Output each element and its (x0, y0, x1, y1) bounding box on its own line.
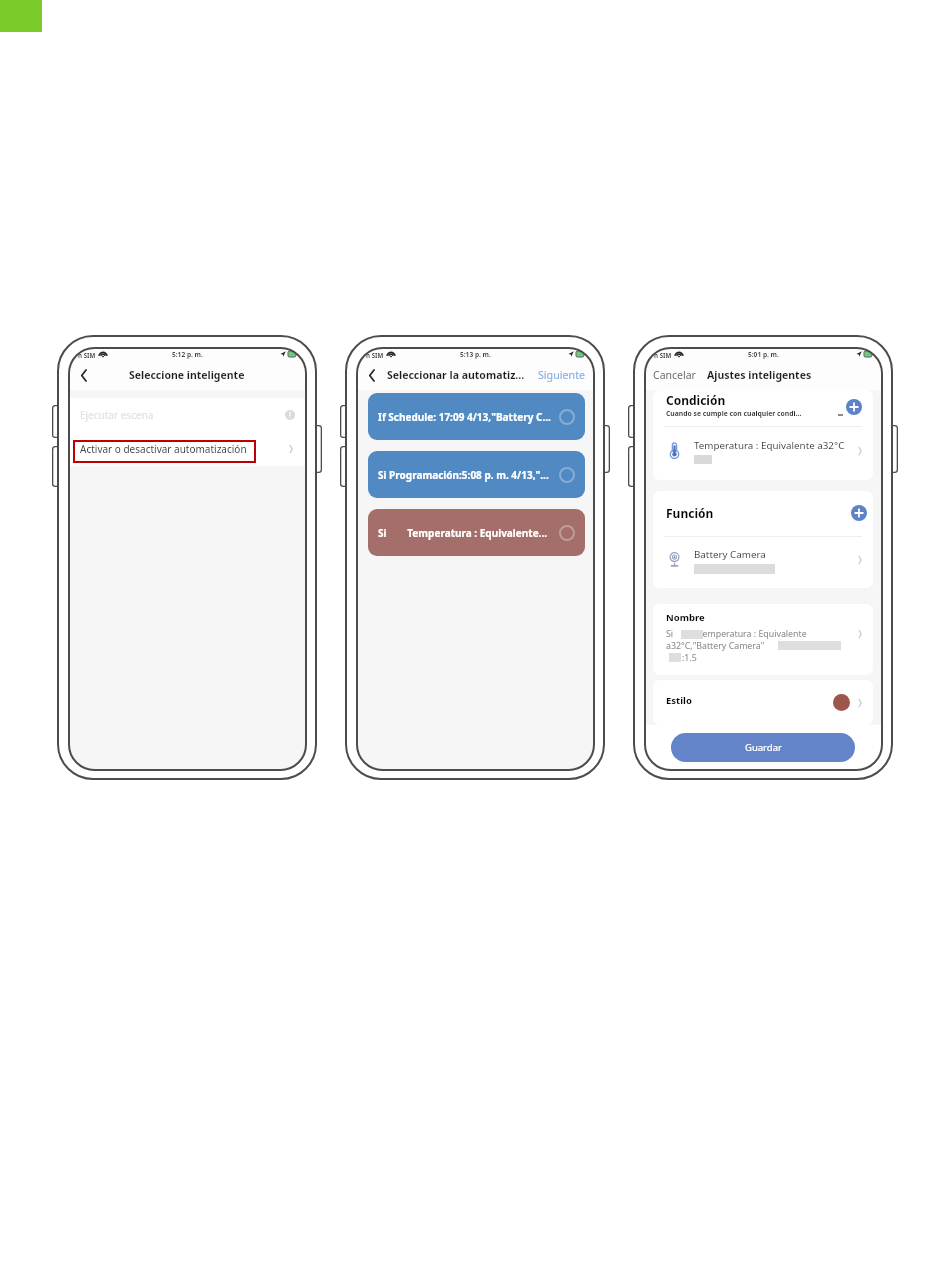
button[interactable]: Back (74, 365, 94, 385)
staticText: 5:12 p. m. (172, 350, 203, 359)
staticText: Cancelar (653, 368, 696, 382)
staticText: Si Programación:5:08 p. m. 4/13,"... (378, 468, 562, 482)
button[interactable]: Cancelar (649, 363, 700, 387)
button[interactable]: If Schedule: 17:09 4/13,"Battery C... (368, 393, 585, 440)
staticText: Siguiente (538, 368, 586, 383)
staticText: Estilo (666, 694, 692, 707)
staticText: Ajustes inteligentes (707, 368, 812, 382)
staticText: n SIM (654, 351, 672, 359)
button[interactable]: Siguiente (530, 363, 594, 388)
staticText: Nombre (666, 611, 705, 624)
button[interactable]: Si Programación:5:08 p. m. 4/13,"... (368, 451, 585, 498)
button[interactable]: Activar o desactivar automatización (68, 432, 306, 466)
staticText: Función (666, 505, 714, 521)
staticText: n SIM (78, 351, 96, 359)
staticText: Temperatura : Equivalente a32°C (694, 439, 845, 452)
button[interactable]: Ejecutar escena (68, 398, 306, 432)
staticText: Seleccionar la automatiz... (387, 368, 525, 382)
staticText: Si Temperatura : Equivalente... (378, 526, 562, 540)
staticText: Cuando se cumple con cualquier condi... (666, 409, 802, 418)
staticText: Battery Camera (694, 548, 766, 561)
staticText: n SIM (366, 351, 384, 359)
staticText: 5:01 p. m. (748, 350, 779, 359)
button[interactable]: Estilo (653, 680, 873, 725)
staticText: If Schedule: 17:09 4/13,"Battery C... (378, 410, 562, 424)
button[interactable]: Add (846, 399, 862, 415)
button[interactable]: Nombre (653, 604, 873, 675)
staticText: 5:13 p. m. (460, 350, 491, 359)
button[interactable]: Temperatura : Equivalente a32°C (653, 427, 873, 480)
staticText: Guardar (745, 741, 782, 754)
button[interactable]: Guardar (671, 733, 855, 762)
staticText: Ejecutar escena (80, 408, 154, 422)
button[interactable]: Si Temperatura : Equivalente... (368, 509, 585, 556)
staticText: Si Temperatura : Equivalente a32°C,"Batt… (666, 628, 807, 664)
staticText: Seleccione inteligente (129, 368, 245, 382)
staticText: Activar o desactivar automatización (80, 442, 247, 456)
button[interactable]: Battery Camera (653, 537, 873, 588)
staticText: Condición (666, 392, 726, 408)
button[interactable]: Back (362, 365, 382, 385)
button[interactable]: Add (851, 505, 867, 521)
